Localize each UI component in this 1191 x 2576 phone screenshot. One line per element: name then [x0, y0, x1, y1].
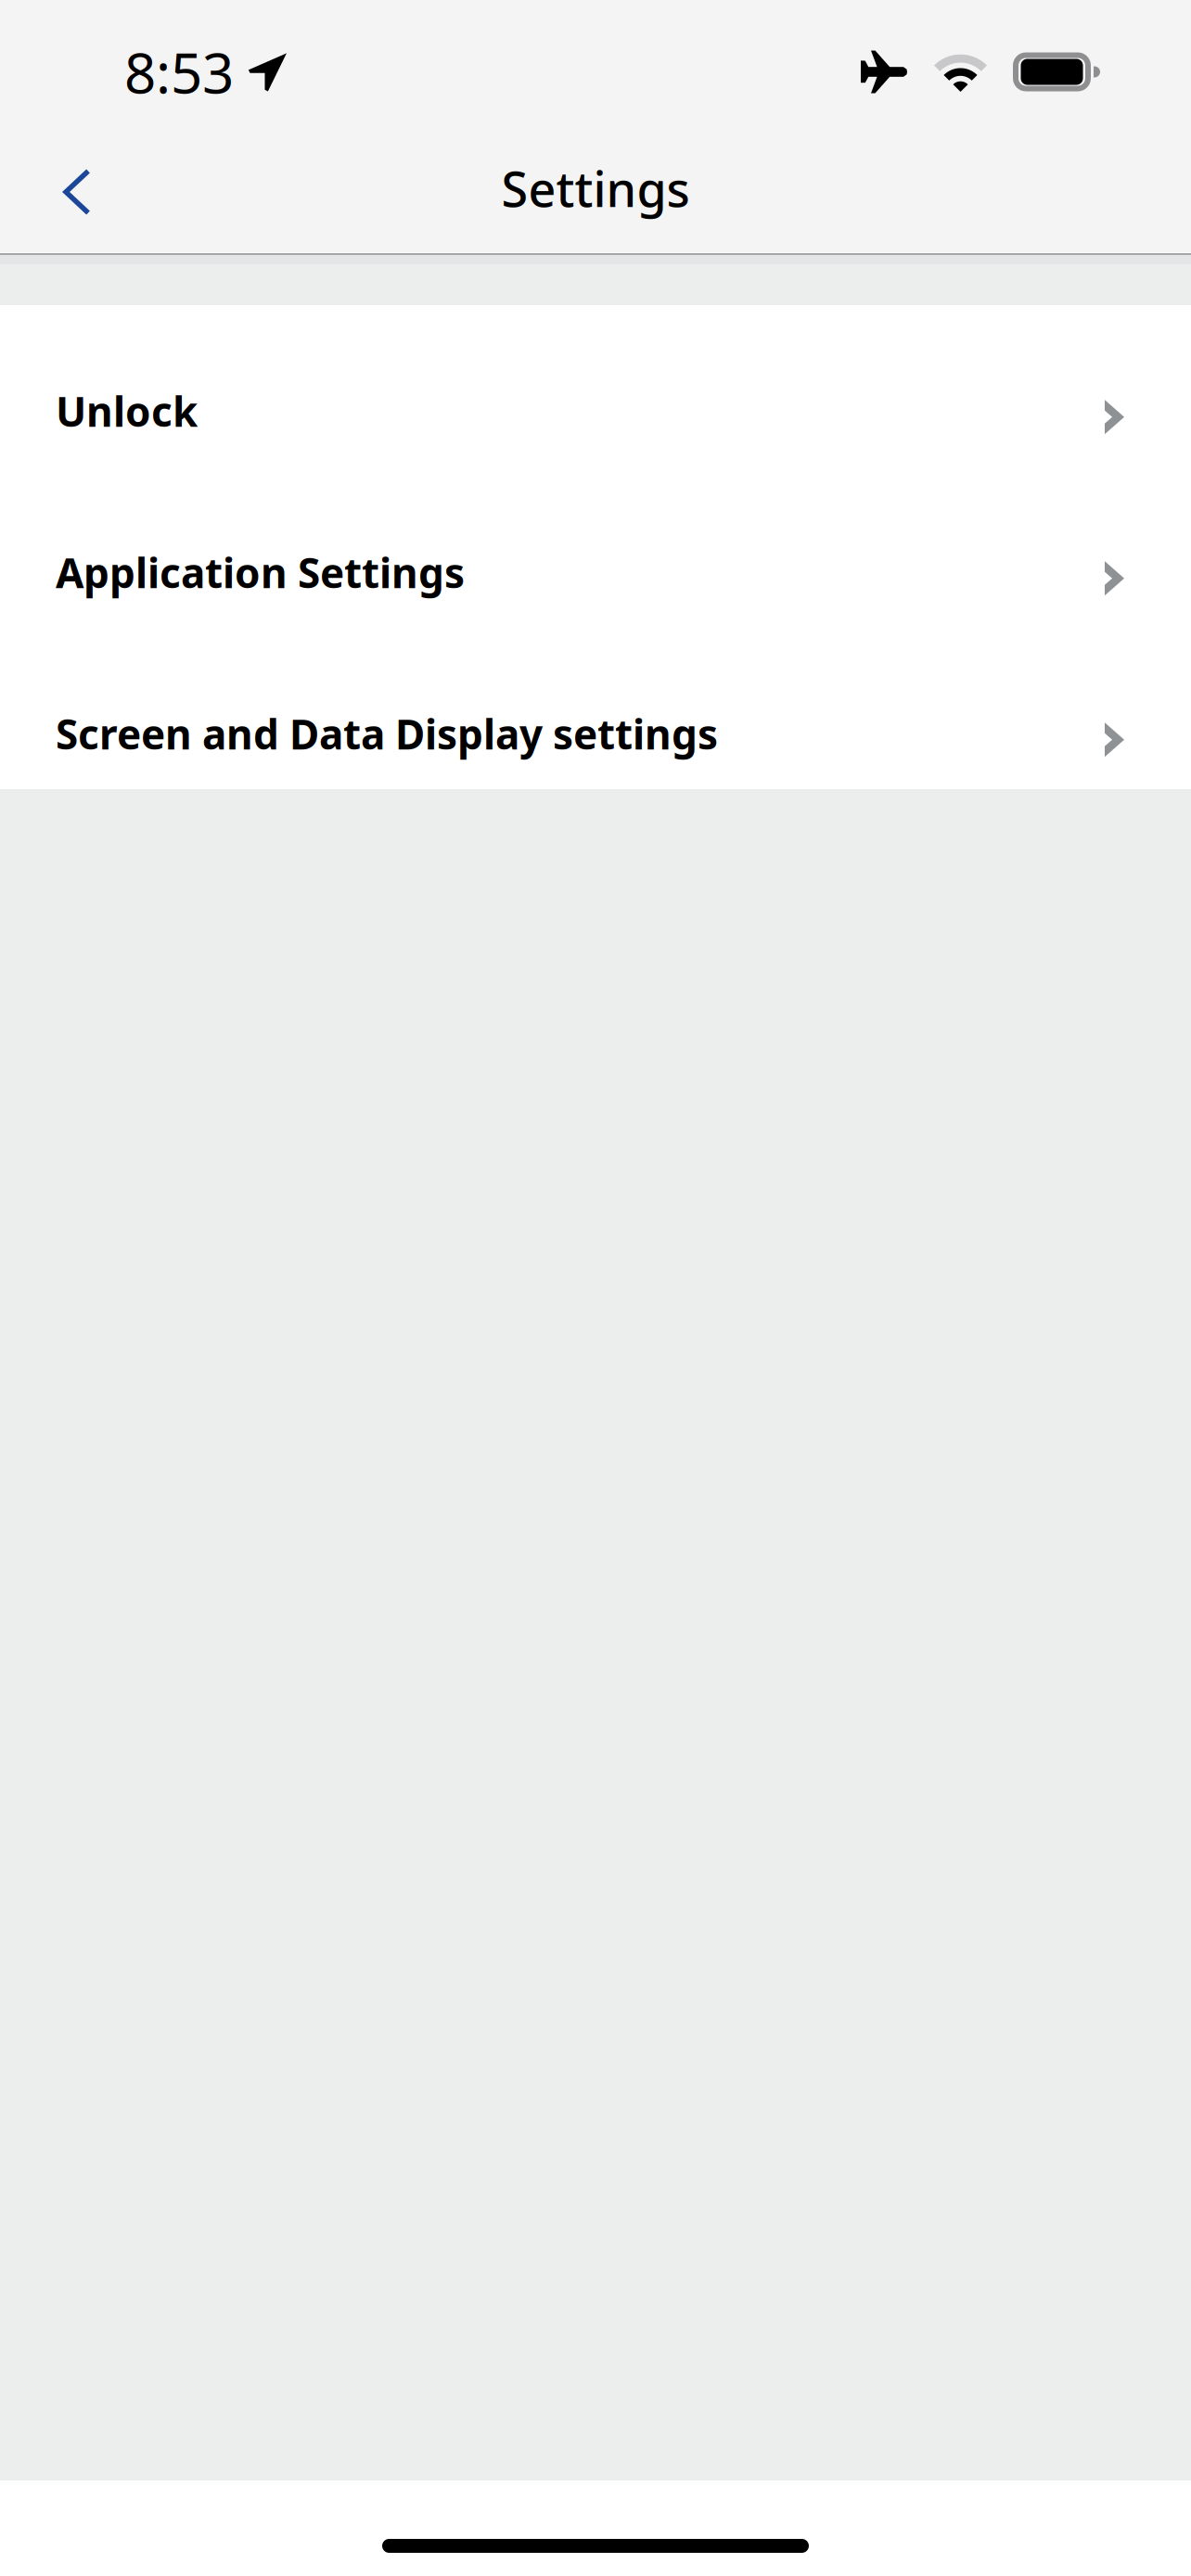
- button[interactable]: Screen and Data Display settings: [0, 628, 1191, 789]
- button[interactable]: Back: [0, 160, 125, 213]
- staticText: 8:53: [124, 35, 234, 109]
- staticText: Unlock: [56, 384, 198, 438]
- staticText: Settings: [501, 156, 690, 220]
- button[interactable]: Application Settings: [0, 466, 1191, 628]
- button[interactable]: Unlock: [0, 305, 1191, 466]
- staticText: Screen and Data Display settings: [56, 707, 718, 761]
- staticText: Application Settings: [56, 545, 465, 599]
